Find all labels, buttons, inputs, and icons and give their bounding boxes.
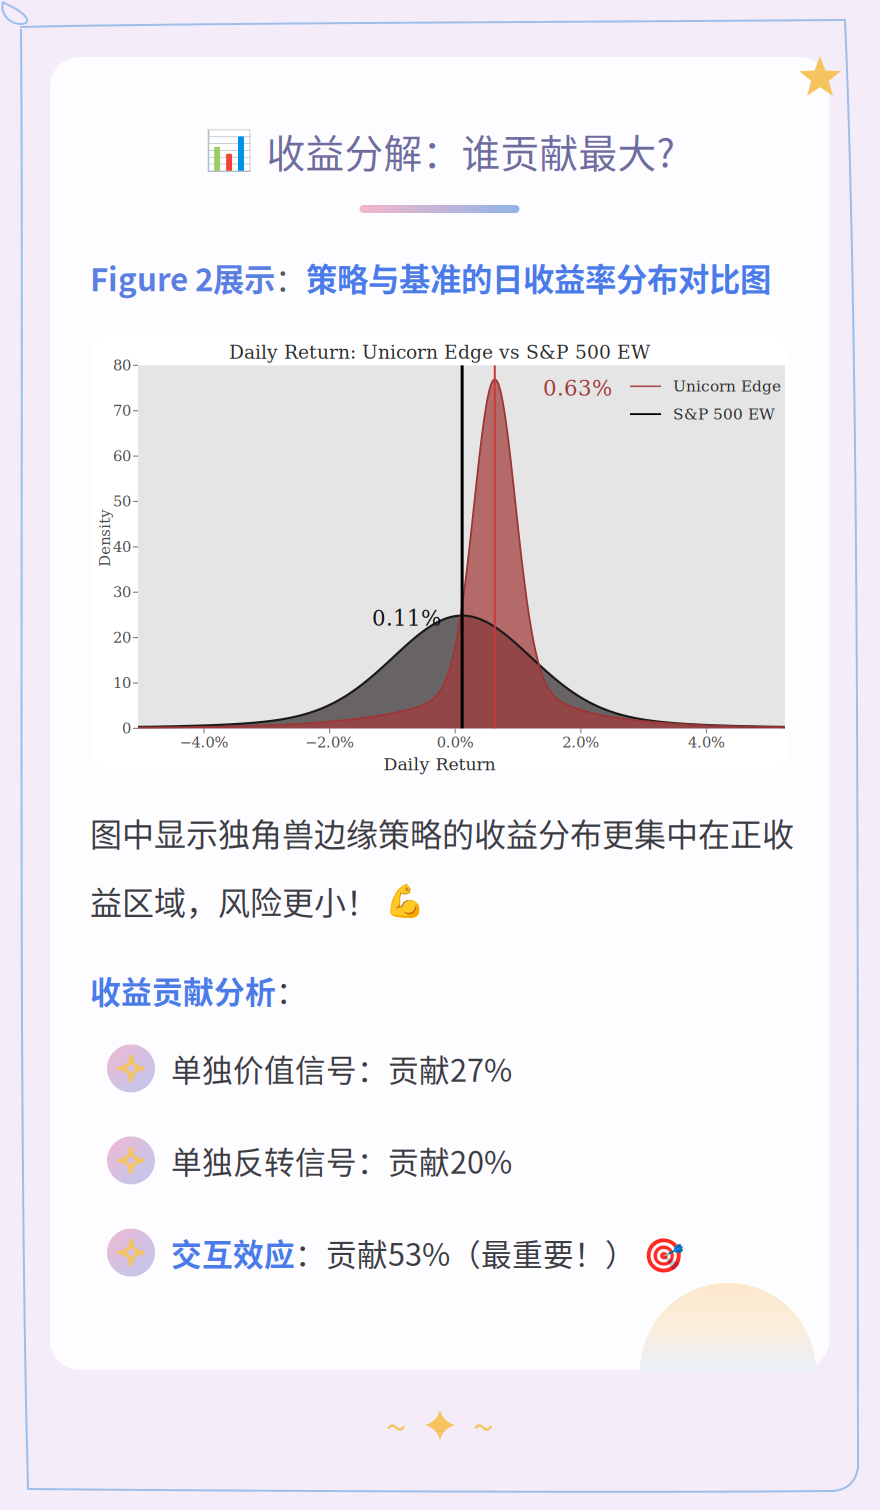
staticText: −4.0% xyxy=(179,734,228,751)
staticText: 0.11% xyxy=(372,606,441,631)
staticText: 40 xyxy=(113,538,131,555)
staticText: ：贡献53%（最重要！） xyxy=(295,1230,636,1275)
staticText: ： xyxy=(276,968,307,1012)
staticText: 80 xyxy=(113,357,131,374)
staticText: S&P 500 EW xyxy=(673,405,775,423)
staticText: Density xyxy=(76,530,133,547)
staticText: 收益分解：谁贡献最大? xyxy=(266,123,674,179)
staticText: 0.0% xyxy=(437,734,474,751)
staticText: Figure 2展示 xyxy=(90,255,275,300)
staticText: 70 xyxy=(113,402,131,419)
staticText: −2.0% xyxy=(305,734,354,751)
staticText: Unicorn Edge xyxy=(673,377,781,395)
staticText: 60 xyxy=(113,448,131,465)
staticText: 30 xyxy=(113,584,131,601)
staticText: 收益贡献分析 xyxy=(90,968,276,1012)
staticText: Daily Return xyxy=(383,754,495,774)
staticText: 📊 xyxy=(204,128,252,174)
staticText: 20 xyxy=(113,629,131,646)
staticText: ~ xyxy=(473,1398,494,1452)
staticText: 单独反转信号：贡献20% xyxy=(171,1138,512,1183)
staticText: ~ xyxy=(386,1398,407,1452)
staticText: 图中显示独角兽边缘策略的收益分布更集中在正收 xyxy=(90,809,794,856)
staticText: 单独价值信号：贡献27% xyxy=(171,1046,512,1091)
staticText: 交互效应 xyxy=(171,1230,295,1275)
staticText: 💪 xyxy=(385,882,425,920)
staticText: 🎯 xyxy=(636,1228,685,1277)
staticText: 益区域，风险更小！ xyxy=(90,878,385,924)
staticText: 2.0% xyxy=(562,734,599,751)
staticText: 0 xyxy=(122,720,131,737)
staticText: 50 xyxy=(113,493,131,510)
staticText: 4.0% xyxy=(688,734,725,751)
staticText: 10 xyxy=(113,674,131,691)
staticText: ： xyxy=(275,255,306,300)
button[interactable]: 单独反转信号：贡献20% xyxy=(107,1136,747,1184)
staticText: 0.63% xyxy=(543,376,612,401)
staticText: Daily Return: Unicorn Edge vs S&P 500 EW xyxy=(229,341,650,363)
staticText: 策略与基准的日收益率分布对比图 xyxy=(306,255,771,300)
button[interactable]: 交互效应 xyxy=(107,1228,747,1277)
button[interactable]: 单独价值信号：贡献27% xyxy=(107,1044,747,1092)
